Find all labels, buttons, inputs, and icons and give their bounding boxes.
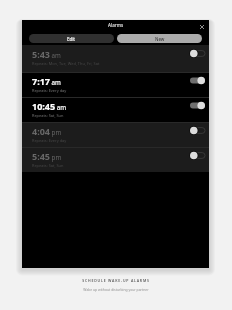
- staticText: 7:17 am: [32, 75, 61, 87]
- button[interactable]: New: [117, 34, 202, 43]
- staticText: Alarms: [108, 22, 124, 28]
- button[interactable]: Alarm off: [190, 126, 205, 135]
- button[interactable]: Alarm on: [190, 76, 205, 85]
- staticText: Repeats: Every day: [32, 88, 67, 93]
- button[interactable]: 5:45 pm: [22, 147, 209, 172]
- staticText: Repeats: Mon, Tue, Wed, Thu, Fri, Sat: [32, 61, 100, 66]
- button[interactable]: Alarm on: [190, 101, 205, 110]
- staticText: 4:04 pm: [32, 125, 62, 137]
- button[interactable]: Alarm off: [190, 49, 205, 58]
- staticText: Repeats: Sat, Sun: [32, 113, 64, 118]
- staticText: Wake up without disturbing your partner: [83, 287, 149, 292]
- button[interactable]: Alarm off: [190, 151, 205, 160]
- staticText: 5:45 pm: [32, 150, 62, 162]
- staticText: New: [155, 36, 165, 42]
- staticText: Repeats: Sat, Sun: [32, 163, 64, 168]
- staticText: 5:43 am: [32, 48, 61, 60]
- staticText: SCHEDULE WAKE-UP ALARMS: [82, 278, 150, 283]
- staticText: 10:45 am: [32, 100, 66, 112]
- button[interactable]: 10:45 am: [22, 97, 209, 123]
- button[interactable]: Edit: [29, 34, 114, 43]
- staticText: Edit: [67, 36, 76, 42]
- button[interactable]: 5:43 am: [22, 45, 209, 72]
- button[interactable]: 7:17 am: [22, 72, 209, 97]
- staticText: Repeats: Every day: [32, 138, 67, 143]
- button[interactable]: Close: [196, 21, 207, 32]
- button[interactable]: 4:04 pm: [22, 122, 209, 147]
